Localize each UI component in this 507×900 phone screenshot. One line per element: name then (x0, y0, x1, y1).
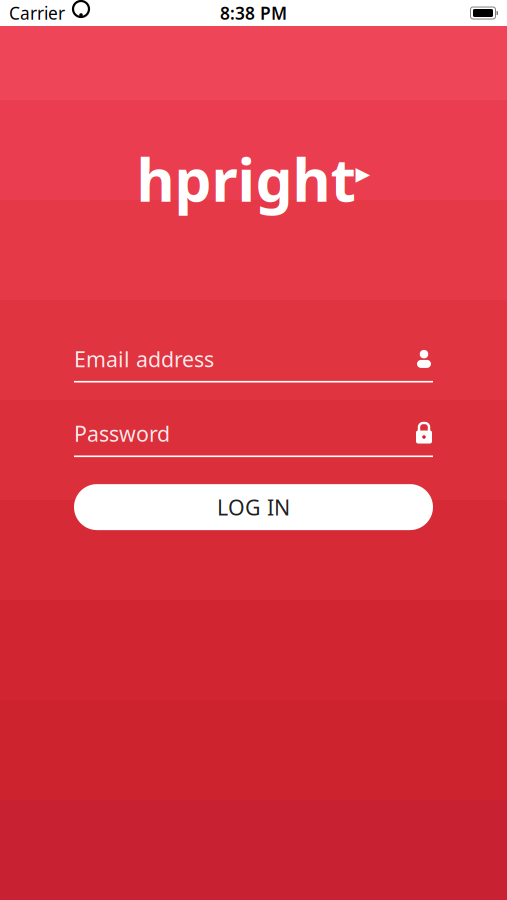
staticText: LOG IN (217, 493, 290, 521)
staticText: 8:38 PM (220, 1, 287, 24)
staticText: Carrier (9, 1, 65, 24)
staticText: hpright (136, 140, 355, 218)
staticText: Email address (74, 345, 214, 373)
staticText: ▸ (355, 156, 370, 190)
staticText: Password (74, 419, 170, 448)
button[interactable]: Email address (74, 344, 433, 382)
button[interactable]: Password (74, 418, 433, 457)
button[interactable]: LOG IN (74, 484, 433, 530)
